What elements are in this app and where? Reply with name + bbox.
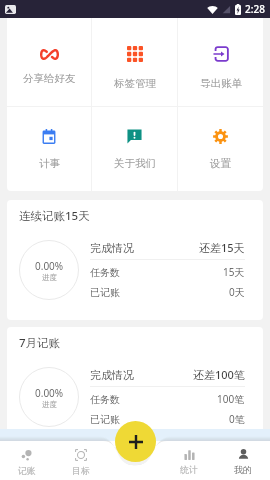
staticText: 关于我们: [114, 157, 156, 170]
staticText: 15天: [223, 265, 245, 279]
staticText: 完成情况: [90, 368, 134, 382]
staticText: 设置: [210, 157, 231, 170]
button[interactable]: 记账: [0, 429, 54, 480]
staticText: 0.00%: [35, 386, 64, 400]
button[interactable]: 目标: [54, 429, 108, 480]
staticText: 目标: [72, 465, 90, 476]
staticText: 统计: [180, 464, 198, 475]
staticText: 还差15天: [199, 240, 245, 255]
staticText: 还差100笔: [193, 367, 245, 382]
staticText: 任务数: [90, 266, 120, 279]
staticText: 记账: [18, 465, 36, 476]
staticText: 标签管理: [114, 77, 156, 90]
button[interactable]: 统计: [162, 429, 216, 480]
staticText: 0笔: [229, 412, 245, 426]
staticText: 分享给好友: [23, 72, 76, 85]
staticText: 7月记账: [19, 335, 61, 351]
staticText: 进度: [42, 400, 57, 409]
staticText: 完成情况: [90, 241, 134, 255]
staticText: 进度: [42, 273, 57, 282]
button[interactable]: 分享给好友: [7, 18, 91, 85]
staticText: 连续记账15天: [19, 208, 90, 224]
staticText: 0.00%: [35, 259, 64, 273]
button[interactable]: 设置: [178, 107, 263, 170]
button[interactable]: 关于我们: [92, 107, 177, 170]
button[interactable]: 标签管理: [92, 18, 177, 90]
staticText: 0天: [229, 285, 245, 299]
button[interactable]: 连续记账15天: [7, 200, 263, 320]
staticText: 导出账单: [200, 77, 242, 90]
button[interactable]: 计事: [7, 107, 91, 170]
staticText: 计事: [39, 157, 60, 170]
staticText: 我的: [234, 464, 252, 475]
button[interactable]: 我的: [216, 429, 270, 480]
staticText: 已记账: [90, 286, 120, 299]
button[interactable]: 7月记账: [7, 327, 263, 447]
staticText: 2:28: [245, 2, 265, 16]
button[interactable]: 导出账单: [178, 18, 263, 90]
staticText: 已记账: [90, 413, 120, 426]
staticText: 100笔: [217, 392, 245, 406]
button[interactable]: Add record: [115, 421, 156, 462]
staticText: 任务数: [90, 393, 120, 406]
